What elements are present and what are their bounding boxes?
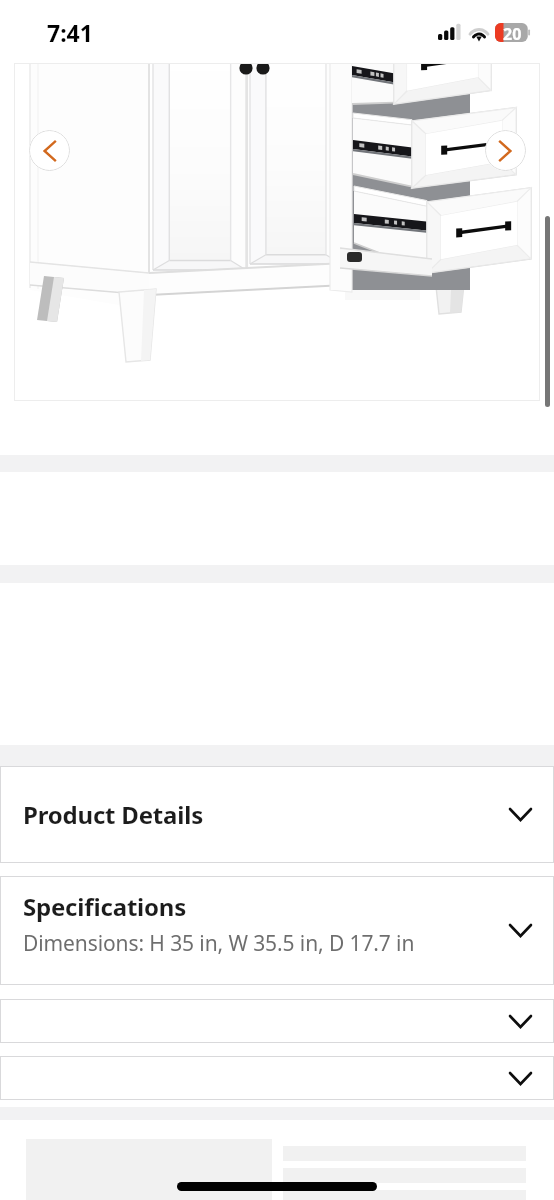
button[interactable]: Next image [485, 130, 526, 171]
staticText: 7:41 [47, 17, 93, 48]
button[interactable]: Expand section [0, 999, 554, 1043]
staticText: 20 [503, 23, 522, 42]
staticText: Product Details [23, 798, 204, 831]
button[interactable]: Expand section [0, 1056, 554, 1100]
staticText: Dimensions: H 35 in, W 35.5 in, D 17.7 i… [23, 929, 415, 958]
button[interactable]: Specifications [0, 876, 554, 985]
staticText: Specifications [23, 890, 187, 923]
button[interactable]: Product Details [0, 766, 554, 863]
button[interactable]: Previous image [29, 130, 70, 171]
